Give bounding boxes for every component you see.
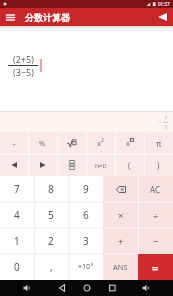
- button[interactable]: 2: [34, 228, 68, 254]
- staticText: −: [158, 118, 162, 126]
- button[interactable]: (: [115, 154, 144, 176]
- staticText: 7: [164, 114, 168, 122]
- button[interactable]: −: [138, 228, 173, 254]
- button[interactable]: [0, 154, 28, 176]
- button[interactable]: [28, 154, 57, 176]
- staticText: 2: [48, 234, 54, 248]
- staticText: ANS: [113, 262, 128, 272]
- button[interactable]: +: [103, 228, 138, 254]
- staticText: −: [153, 235, 159, 248]
- button[interactable]: 8: [34, 176, 68, 202]
- button[interactable]: -: [0, 132, 28, 154]
- button[interactable]: ×10: [68, 254, 103, 280]
- button[interactable]: 5: [34, 202, 68, 228]
- staticText: -: [13, 138, 16, 149]
- button[interactable]: 3: [68, 228, 103, 254]
- button[interactable]: [151, 8, 173, 26]
- button[interactable]: ANS: [103, 254, 138, 280]
- button[interactable]: [103, 176, 138, 202]
- button[interactable]: =: [138, 254, 173, 280]
- staticText: ): [157, 160, 160, 171]
- button[interactable]: [103, 280, 138, 296]
- staticText: ,: [50, 260, 53, 274]
- button[interactable]: ×: [103, 202, 138, 228]
- button[interactable]: %: [28, 132, 57, 154]
- staticText: 0: [14, 260, 20, 274]
- staticText: %: [39, 138, 46, 148]
- staticText: AC: [150, 184, 161, 195]
- button[interactable]: [57, 154, 86, 176]
- button[interactable]: π: [144, 132, 173, 154]
- staticText: 3: [83, 234, 89, 248]
- button[interactable]: AC: [138, 176, 173, 202]
- button[interactable]: [57, 132, 86, 154]
- button[interactable]: 9: [68, 176, 103, 202]
- staticText: π: [156, 138, 162, 149]
- staticText: 7: [14, 182, 20, 196]
- staticText: 8: [48, 182, 54, 196]
- button[interactable]: 7: [0, 176, 34, 202]
- button[interactable]: x: [115, 132, 144, 154]
- button[interactable]: 6: [68, 202, 103, 228]
- staticText: 4: [14, 208, 20, 222]
- staticText: (2+5): [13, 53, 34, 65]
- staticText: 9: [83, 182, 89, 196]
- staticText: 分数计算器: [25, 12, 70, 23]
- staticText: 6: [83, 208, 89, 222]
- staticText: ÷: [153, 209, 159, 222]
- staticText: 2: [101, 137, 104, 144]
- button[interactable]: F⇌D: [86, 154, 115, 176]
- button[interactable]: ,: [34, 254, 68, 280]
- staticText: +: [118, 235, 124, 248]
- staticText: ×10: [78, 262, 91, 272]
- staticText: 1: [14, 234, 20, 248]
- staticText: x: [126, 138, 130, 148]
- button[interactable]: [0, 280, 34, 296]
- staticText: (3−5): [13, 66, 34, 78]
- button[interactable]: x: [86, 132, 115, 154]
- staticText: x: [91, 261, 94, 267]
- button[interactable]: 0: [0, 254, 34, 280]
- staticText: =: [152, 260, 159, 275]
- staticText: 01:37: [158, 1, 170, 7]
- button[interactable]: [0, 8, 20, 26]
- staticText: F⇌D: [95, 162, 107, 169]
- button[interactable]: ): [144, 154, 173, 176]
- button[interactable]: 4: [0, 202, 34, 228]
- button[interactable]: 1: [0, 228, 34, 254]
- staticText: x: [97, 138, 101, 148]
- button[interactable]: ÷: [138, 202, 173, 228]
- button[interactable]: [34, 280, 68, 296]
- staticText: ×: [118, 209, 124, 222]
- button[interactable]: [138, 280, 173, 296]
- button[interactable]: [68, 280, 103, 296]
- staticText: 5: [48, 208, 54, 222]
- staticText: (: [128, 160, 131, 171]
- staticText: 2: [164, 123, 168, 131]
